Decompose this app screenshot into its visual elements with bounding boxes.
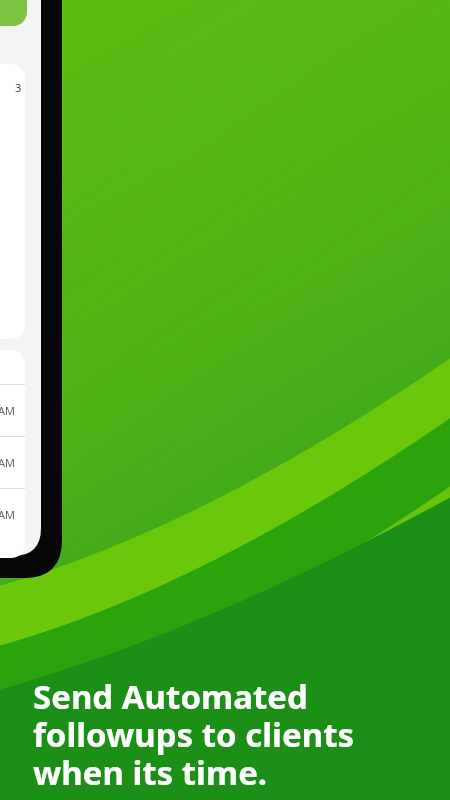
button[interactable]: AM (0, 384, 25, 436)
button[interactable]: App header (0, 0, 27, 26)
staticText: Send Automated followups to clients when… (33, 674, 355, 794)
button[interactable]: AM (0, 436, 25, 488)
staticText: AM (0, 403, 16, 418)
button[interactable]: AM (0, 488, 25, 540)
staticText: AM (0, 507, 16, 522)
staticText: AM (0, 455, 16, 470)
staticText: 3 (15, 80, 22, 95)
button[interactable]: 3 (0, 64, 25, 339)
